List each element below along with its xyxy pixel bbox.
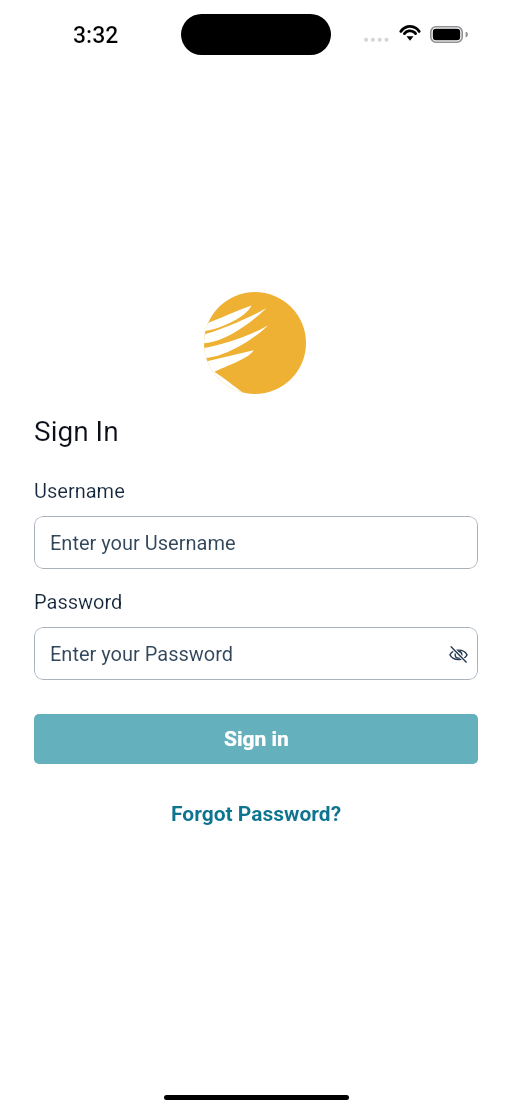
button[interactable]: Enter your Password	[34, 627, 478, 680]
button[interactable]: Enter your Username	[34, 516, 478, 569]
staticText: 3:32	[73, 22, 119, 49]
button[interactable]: Sign in	[34, 714, 478, 764]
button[interactable]: Show password	[441, 637, 475, 671]
staticText: Sign in	[224, 727, 289, 752]
staticText: Enter your Password	[50, 642, 234, 665]
staticText: Forgot Password?	[171, 802, 342, 827]
staticText: Username	[34, 479, 125, 502]
staticText: Enter your Username	[50, 531, 236, 554]
button[interactable]: Forgot Password?	[159, 797, 354, 832]
staticText: Password	[34, 590, 123, 613]
staticText: Sign In	[34, 415, 119, 448]
